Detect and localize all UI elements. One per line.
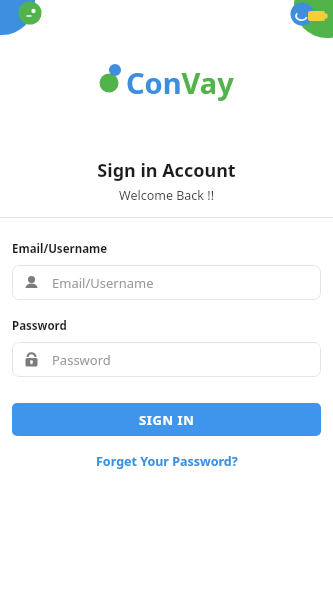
other: Password [24, 352, 39, 367]
staticText: Forget Your Password? [96, 453, 238, 470]
staticText: SIGN IN [139, 411, 195, 429]
button[interactable]: Email or username [12, 265, 321, 300]
staticText: Password [12, 318, 67, 334]
other: Email or username [24, 275, 39, 290]
staticText: Email/Username [12, 241, 108, 257]
button[interactable]: Password [12, 342, 321, 377]
staticText: Email/Username [52, 274, 154, 292]
staticText: ConVay [126, 63, 234, 102]
staticText: Sign in Account [0, 158, 333, 183]
staticText: Welcome Back !! [0, 187, 333, 204]
button[interactable]: Forget Your Password? [12, 453, 321, 470]
staticText: Password [52, 351, 111, 369]
button[interactable]: SIGN IN [12, 403, 321, 436]
